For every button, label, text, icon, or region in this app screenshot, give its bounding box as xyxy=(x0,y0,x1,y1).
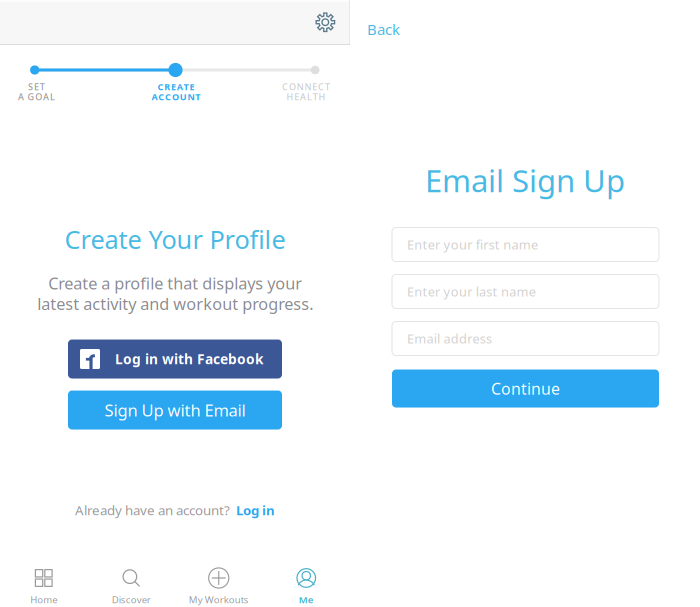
staticText: SET A GOAL xyxy=(17,80,54,103)
staticText: Enter your first name xyxy=(407,236,538,253)
button[interactable]: Log in xyxy=(236,501,275,519)
button[interactable]: Email address xyxy=(392,321,659,355)
staticText: Discover xyxy=(112,593,151,606)
staticText: Sign Up with Email xyxy=(104,399,245,421)
button[interactable]: Settings xyxy=(314,11,336,33)
button[interactable]: Log in with Facebook xyxy=(68,339,282,378)
button[interactable]: Enter your first name xyxy=(392,227,659,261)
staticText: Create a profile that displays your late… xyxy=(37,272,313,315)
staticText: Me xyxy=(299,593,314,606)
staticText: Continue xyxy=(491,378,560,399)
button[interactable]: Discover xyxy=(87,567,175,607)
button[interactable]: Continue xyxy=(392,369,659,407)
button[interactable]: Me xyxy=(262,567,350,607)
staticText: CONNECT HEALTH xyxy=(282,80,329,103)
staticText: Home xyxy=(30,593,57,606)
staticText: Log in xyxy=(236,501,275,519)
staticText: Email address xyxy=(407,330,492,347)
staticText: My Workouts xyxy=(189,593,249,606)
button[interactable]: Home xyxy=(0,567,87,607)
staticText: Create Your Profile xyxy=(64,222,285,256)
button[interactable]: Sign Up with Email xyxy=(68,390,282,429)
button[interactable]: Enter your last name xyxy=(392,274,659,308)
staticText: Already have an account? xyxy=(75,501,230,519)
staticText: CREATE ACCOUNT xyxy=(151,80,200,103)
staticText: Enter your last name xyxy=(407,283,536,300)
staticText: Email Sign Up xyxy=(425,159,625,201)
staticText: Log in with Facebook xyxy=(115,350,264,368)
button[interactable]: Back xyxy=(359,13,408,45)
staticText: Back xyxy=(367,19,400,39)
button[interactable]: My Workouts xyxy=(175,567,262,607)
